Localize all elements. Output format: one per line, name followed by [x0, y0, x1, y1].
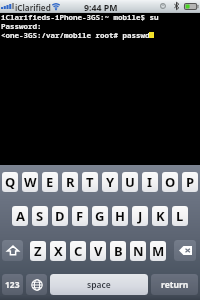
- staticText: Y: [106, 173, 115, 191]
- button[interactable]: U: [122, 172, 138, 192]
- button[interactable]: O: [162, 172, 178, 192]
- button[interactable]: N: [130, 241, 146, 261]
- staticText: T: [86, 173, 94, 191]
- button[interactable]: Shift: [2, 240, 23, 261]
- button[interactable]: R: [62, 172, 78, 192]
- button[interactable]: Q: [2, 172, 18, 192]
- button[interactable]: A: [12, 206, 28, 226]
- button[interactable]: L: [172, 206, 188, 226]
- button[interactable]: B: [110, 241, 126, 261]
- staticText: V: [94, 242, 103, 260]
- staticText: O: [165, 173, 176, 191]
- staticText: Q: [5, 173, 16, 191]
- staticText: iClarified: [15, 2, 51, 13]
- staticText: X: [54, 242, 63, 260]
- button[interactable]: M: [150, 241, 166, 261]
- staticText: P: [186, 173, 195, 191]
- button[interactable]: 123: [2, 274, 23, 295]
- staticText: A: [16, 207, 25, 225]
- staticText: N: [133, 242, 144, 260]
- staticText: G: [95, 207, 105, 225]
- button[interactable]: P: [182, 172, 198, 192]
- staticText: B: [114, 242, 123, 260]
- staticText: K: [156, 207, 165, 225]
- staticText: M: [152, 242, 165, 260]
- staticText: L: [176, 207, 184, 225]
- button[interactable]: V: [90, 241, 106, 261]
- button[interactable]: K: [152, 206, 168, 226]
- button[interactable]: S: [32, 206, 48, 226]
- staticText: D: [55, 207, 65, 225]
- button[interactable]: T: [82, 172, 98, 192]
- staticText: J: [138, 207, 143, 225]
- staticText: E: [46, 173, 54, 191]
- button[interactable]: H: [112, 206, 128, 226]
- staticText: U: [125, 173, 135, 191]
- button[interactable]: Y: [102, 172, 118, 192]
- button[interactable]: I: [142, 172, 158, 192]
- button[interactable]: C: [70, 241, 86, 261]
- staticText: I: [147, 173, 153, 191]
- button[interactable]: space: [50, 274, 148, 295]
- staticText: R: [66, 173, 75, 191]
- staticText: 123: [5, 279, 20, 291]
- staticText: Z: [34, 242, 42, 260]
- staticText: space: [87, 279, 111, 291]
- staticText: W: [24, 173, 37, 191]
- button[interactable]: E: [42, 172, 58, 192]
- staticText: F: [76, 207, 84, 225]
- staticText: 9:44 PM: [84, 2, 118, 14]
- button[interactable]: J: [132, 206, 148, 226]
- button[interactable]: D: [52, 206, 68, 226]
- button[interactable]: Backspace: [174, 240, 196, 261]
- button[interactable]: W: [22, 172, 38, 192]
- button[interactable]: F: [72, 206, 88, 226]
- staticText: C: [74, 242, 83, 260]
- staticText: S: [36, 207, 44, 225]
- button[interactable]: X: [50, 241, 66, 261]
- button[interactable]: G: [92, 206, 108, 226]
- button[interactable]: return: [151, 274, 198, 295]
- staticText: return: [161, 279, 189, 291]
- button[interactable]: Z: [30, 241, 46, 261]
- button[interactable]: Switch keyboard language: [26, 274, 47, 295]
- staticText: iClarifieds-iPhone-3GS:~ mobile$ su Pass…: [1, 12, 159, 40]
- staticText: H: [115, 207, 125, 225]
